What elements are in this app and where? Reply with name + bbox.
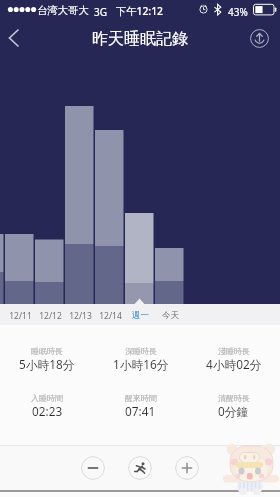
staticText: 12/12	[39, 310, 62, 322]
button[interactable]: 12/14	[95, 304, 125, 325]
staticText: 入睡時間	[31, 393, 63, 403]
button[interactable]: 今天	[155, 304, 185, 325]
staticText: 1小時16分	[113, 356, 169, 372]
button[interactable]: 12/13	[65, 304, 95, 325]
staticText: 02:23	[32, 403, 63, 419]
staticText: 清醒時長	[218, 393, 250, 403]
staticText: 0分鐘	[218, 403, 249, 419]
button[interactable]: 12/12	[35, 304, 65, 325]
staticText: 12/14	[99, 310, 122, 322]
button[interactable]: Decrease	[81, 456, 105, 480]
staticText: 12/13	[69, 310, 92, 322]
staticText: 深睡時長	[125, 346, 157, 356]
staticText: 5小時18分	[19, 356, 75, 372]
staticText: 下午12:12	[116, 4, 163, 18]
button[interactable]: Activity	[128, 456, 152, 480]
staticText: 台湾大哥大	[37, 4, 89, 17]
button[interactable]: Back	[0, 20, 26, 57]
staticText: 醒來時間	[125, 393, 157, 403]
staticText: 週一	[132, 310, 149, 321]
staticText: 12/11	[9, 310, 32, 322]
button[interactable]: 週一	[125, 304, 155, 325]
staticText: 43%	[228, 5, 248, 19]
staticText: 睡眠時長	[31, 346, 63, 356]
button[interactable]: Share	[248, 28, 270, 50]
staticText: 07:41	[125, 403, 156, 419]
staticText: 3G	[94, 5, 107, 19]
staticText: 今天	[162, 310, 179, 321]
button[interactable]: 12/11	[5, 304, 35, 325]
staticText: 4小時02分	[206, 356, 262, 372]
staticText: 淺睡時長	[218, 346, 250, 356]
button[interactable]: Increase	[175, 456, 199, 480]
staticText: 昨天睡眠記錄	[92, 29, 188, 49]
